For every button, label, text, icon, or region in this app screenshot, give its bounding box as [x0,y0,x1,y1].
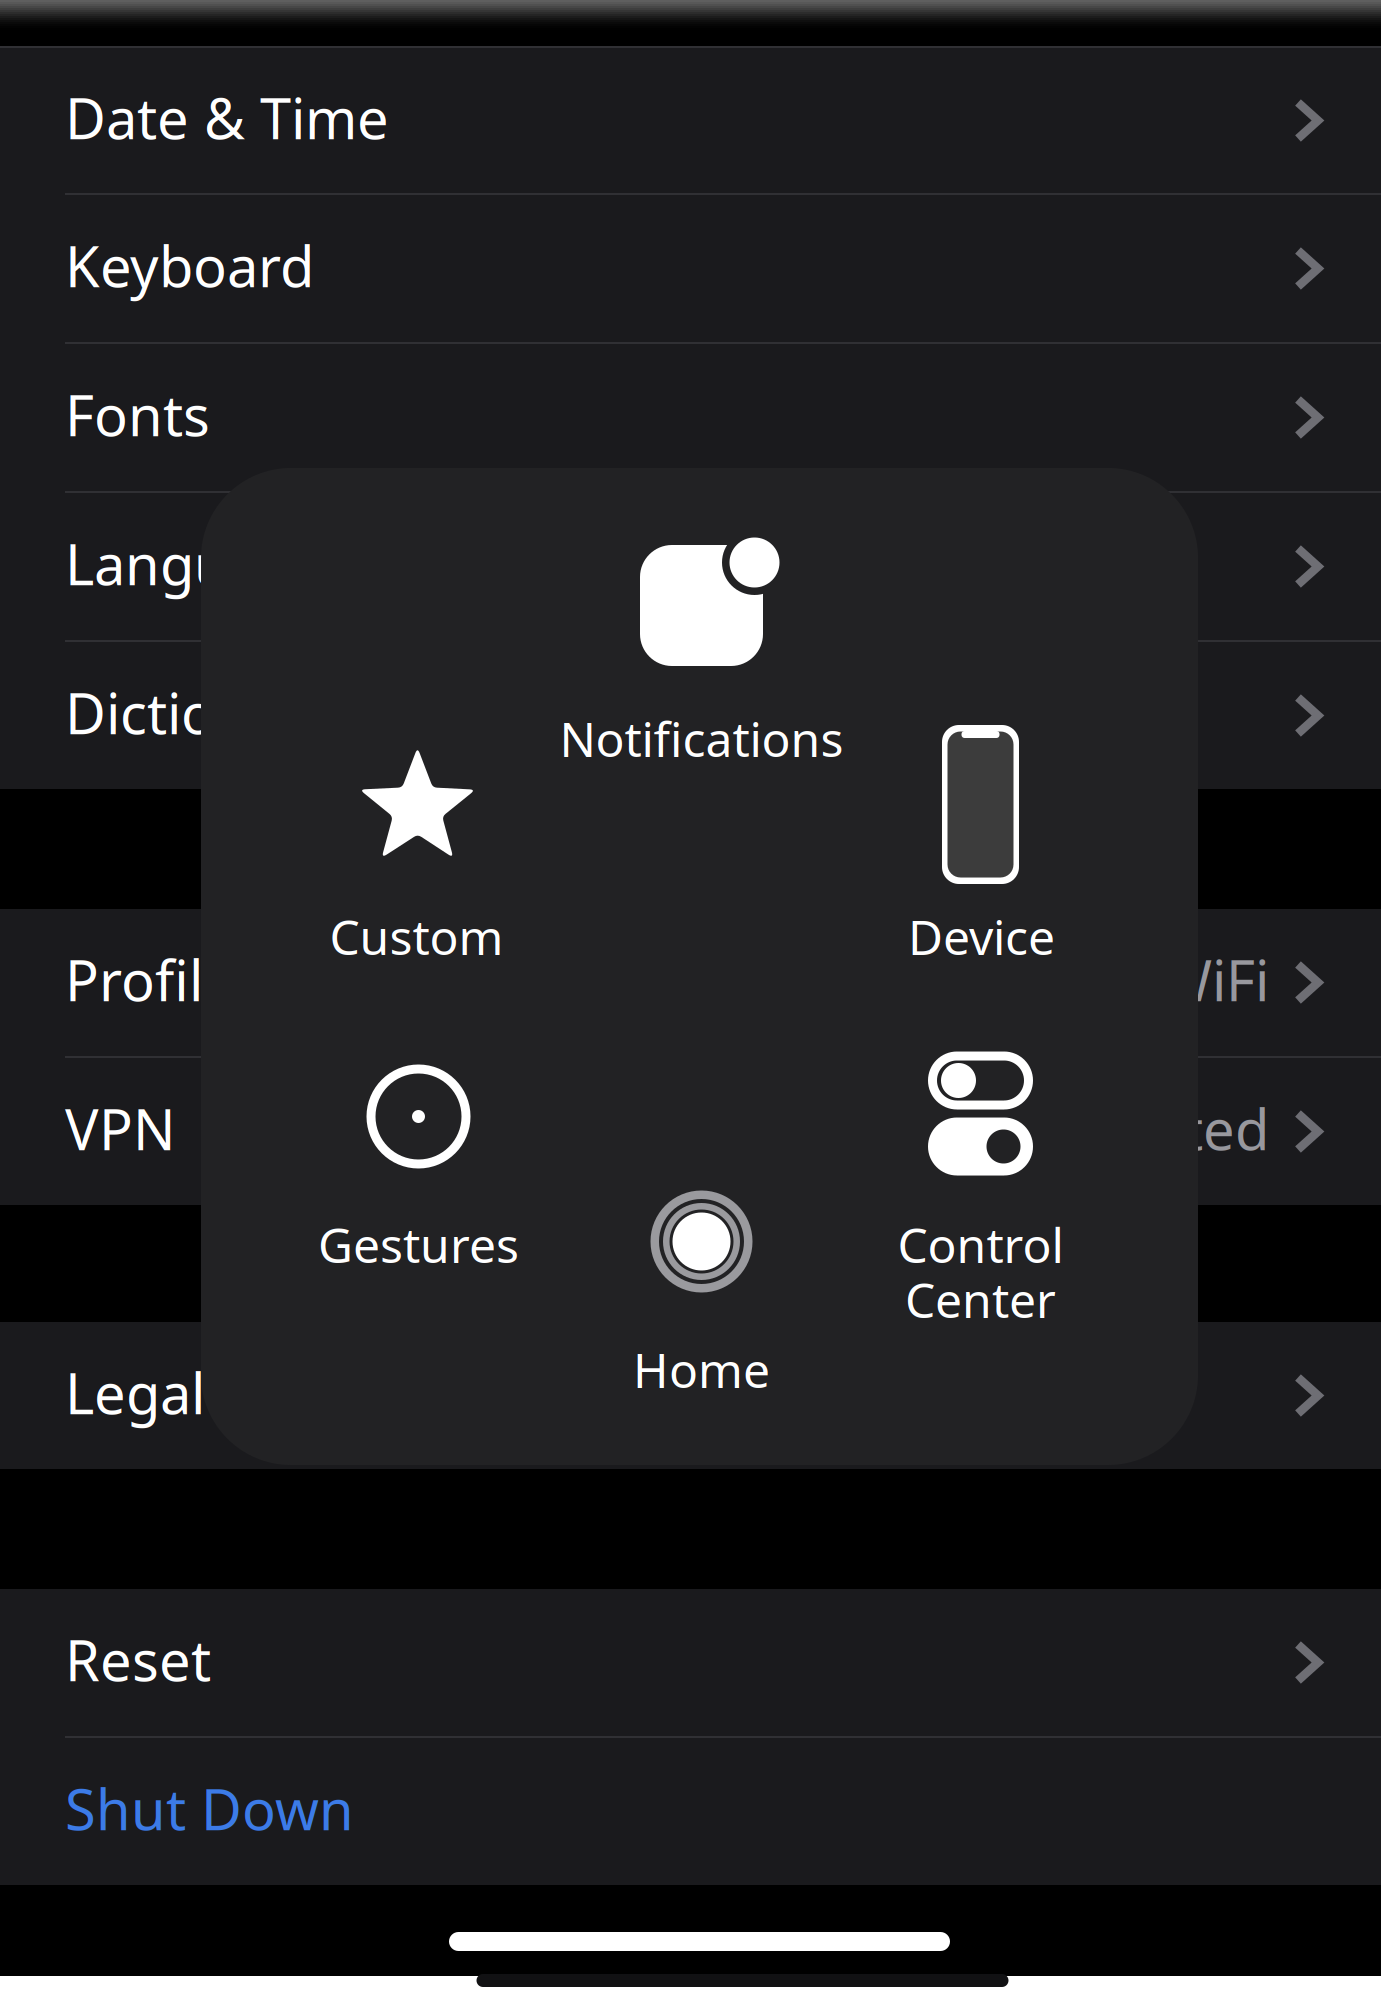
staticText: Home [633,1338,770,1401]
staticText: Shut Down [65,1771,354,1846]
staticText: Gestures [318,1213,519,1276]
staticText: Center [905,1268,1056,1331]
button[interactable]: Date & Time [0,48,1381,193]
staticText: Device [908,905,1055,968]
button[interactable]: VPN [0,1058,1381,1205]
button[interactable]: Keyboard [0,195,1381,342]
button[interactable]: Notifications [551,563,851,783]
staticText: VPN [65,1091,176,1166]
button[interactable]: Language & Region [0,493,1381,640]
button[interactable]: Profiles [0,909,1381,1056]
button[interactable]: Fonts [0,344,1381,491]
staticText: Reset [65,1622,211,1697]
button[interactable]: Gestures [303,1076,533,1286]
button[interactable]: Device [871,766,1091,976]
staticText: Control [897,1213,1063,1276]
button[interactable]: Home [591,1201,811,1411]
button[interactable]: Custom [307,768,527,978]
staticText: Language & Region [65,526,581,601]
button[interactable]: Legal & Regulatory [0,1322,1381,1469]
staticText: BusinessWiFi [927,942,1269,1017]
staticText: Custom [329,905,503,968]
staticText: Legal & Regulatory [65,1355,563,1430]
staticText: Fonts [65,377,210,452]
button[interactable]: Reset [0,1589,1381,1736]
staticText: Notifications [559,707,843,770]
button[interactable]: Control Center [870,1072,1090,1342]
staticText: Profiles [65,942,262,1017]
button[interactable]: Shut Down [0,1738,1381,1885]
staticText: Date & Time [65,80,389,155]
button[interactable]: Dictionary [0,642,1381,789]
staticText: Dictionary [65,675,333,750]
staticText: Keyboard [65,228,314,303]
staticText: Not Connected [873,1091,1269,1166]
